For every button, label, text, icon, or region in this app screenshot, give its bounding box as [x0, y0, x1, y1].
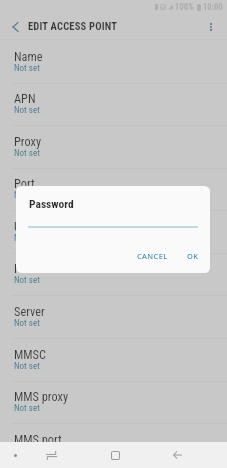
button[interactable]: Username: [0, 211, 227, 254]
staticText: 10:00: [203, 2, 223, 12]
staticText: Username: [14, 220, 63, 234]
button[interactable]: MMS proxy: [0, 381, 227, 424]
staticText: Not set: [14, 403, 40, 414]
staticText: EDIT ACCESS POINT: [28, 20, 118, 32]
staticText: OK: [187, 251, 199, 261]
staticText: APN: [14, 92, 36, 106]
staticText: Not set: [14, 361, 40, 372]
staticText: Not set: [14, 63, 40, 74]
staticText: MMS proxy: [14, 390, 69, 404]
button[interactable]: More options: [194, 13, 227, 40]
button[interactable]: Home: [101, 442, 129, 468]
staticText: MMS port: [14, 433, 62, 442]
button[interactable]: APN: [0, 83, 227, 126]
staticText: Not set: [14, 190, 40, 201]
button[interactable]: CANCEL: [132, 248, 173, 264]
button[interactable]: Name: [0, 41, 227, 84]
button[interactable]: Port: [0, 168, 227, 211]
staticText: Password: [29, 197, 74, 210]
button[interactable]: MMSC: [0, 339, 227, 382]
staticText: CANCEL: [137, 251, 168, 261]
staticText: Not set: [14, 318, 40, 329]
button[interactable]: Navigate up: [0, 13, 31, 40]
button[interactable]: Recent apps: [37, 442, 65, 468]
staticText: Not set: [14, 105, 40, 116]
staticText: 100%: [175, 2, 195, 12]
button[interactable]: Server: [0, 296, 227, 339]
button[interactable]: Password: [0, 253, 227, 296]
button[interactable]: Proxy: [0, 126, 227, 169]
button[interactable]: MMS port: [0, 424, 227, 442]
staticText: Proxy: [14, 135, 42, 149]
staticText: Port: [14, 177, 35, 191]
staticText: MMSC: [14, 348, 46, 362]
staticText: Not set: [14, 275, 40, 286]
staticText: Password: [14, 262, 62, 276]
staticText: Not set: [14, 148, 40, 159]
staticText: Not set: [14, 233, 40, 244]
staticText: Name: [14, 50, 43, 64]
button[interactable]: OK: [182, 248, 204, 264]
button[interactable]: Back: [163, 442, 191, 468]
staticText: Server: [14, 305, 45, 319]
button[interactable]: Hide navigation bar: [4, 442, 26, 468]
